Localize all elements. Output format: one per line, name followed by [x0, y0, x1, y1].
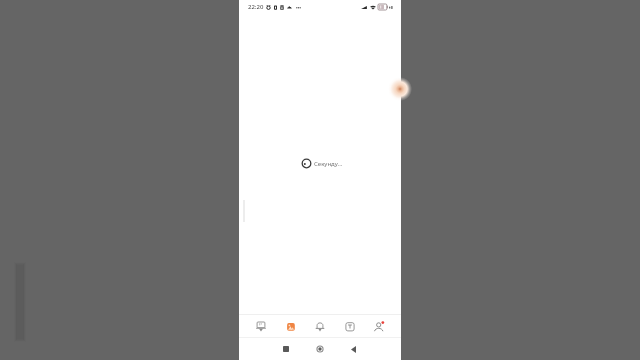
- button[interactable]: Home: [312, 341, 328, 357]
- button[interactable]: Back: [345, 341, 361, 357]
- button[interactable]: Recents: [278, 341, 294, 357]
- button[interactable]: Tasks: [281, 314, 301, 338]
- button[interactable]: Home: [251, 314, 271, 338]
- staticText: 22:20: [248, 3, 264, 11]
- staticText: Секунду...: [314, 160, 343, 168]
- button[interactable]: Profile: [369, 314, 389, 338]
- button[interactable]: Deliveries: [340, 314, 360, 338]
- button[interactable]: Create: [376, 73, 408, 105]
- button[interactable]: Notifications: [310, 314, 330, 338]
